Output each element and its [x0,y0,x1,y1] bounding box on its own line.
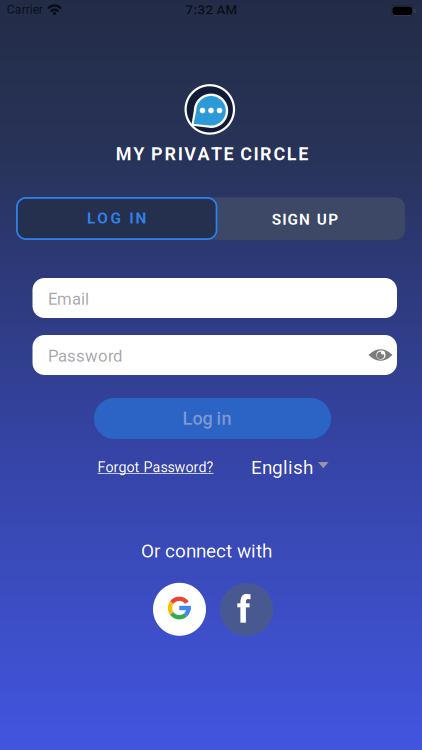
staticText: U [317,210,327,228]
staticText: O [97,209,108,227]
staticText: E [298,143,308,165]
button[interactable]: L [16,197,217,240]
staticText: Or connect with [141,540,272,562]
button[interactable]: Sign in with Facebook [220,583,273,636]
staticText: E [223,143,233,165]
button[interactable]: S [211,198,398,241]
button[interactable]: Forgot Password? [97,459,213,476]
staticText: S [272,210,281,228]
staticText: T [211,143,222,165]
staticText: L [287,143,297,165]
staticText: N [135,209,146,227]
staticText: M [116,143,132,165]
staticText: I [254,143,259,165]
staticText: Password [48,346,122,366]
staticText: Carrier [7,3,43,17]
staticText: 7:32 AM [185,2,237,17]
button[interactable]: Sign in with Google [153,583,206,636]
staticText: N [299,210,310,228]
staticText: I [178,143,183,165]
staticText: English [251,456,313,479]
staticText: Log in [182,408,231,429]
staticText: Y [133,143,144,165]
staticText: G [288,210,298,228]
button[interactable]: Show password [368,340,393,370]
staticText: C [240,143,252,165]
staticText: R [164,143,176,165]
staticText: I [282,210,286,228]
staticText: A [198,143,210,165]
staticText: I [129,209,133,227]
staticText: Forgot Password? [97,459,213,476]
staticText: G [111,209,121,227]
staticText: P [328,210,338,228]
staticText: R [260,143,272,165]
button[interactable]: English [251,456,329,479]
button[interactable]: Log in [94,398,331,439]
staticText: C [273,143,285,165]
staticText: Email [48,289,89,309]
staticText: V [184,143,196,165]
staticText: L [87,209,95,227]
staticText: P [151,143,163,165]
